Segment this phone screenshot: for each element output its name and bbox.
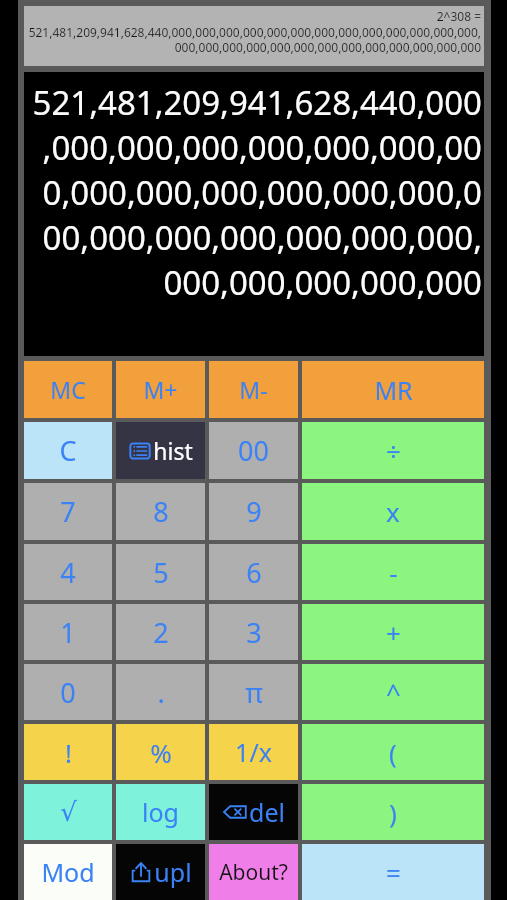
staticText: 5: [153, 554, 169, 591]
staticText: 00: [238, 432, 269, 469]
button[interactable]: 3: [209, 604, 298, 660]
staticText: .: [157, 674, 165, 711]
button[interactable]: x: [302, 483, 484, 540]
button[interactable]: M-: [209, 361, 298, 418]
button[interactable]: +: [302, 604, 484, 660]
button[interactable]: .: [116, 664, 205, 720]
staticText: M+: [143, 374, 178, 405]
staticText: !: [65, 735, 72, 770]
button[interactable]: del: [209, 784, 298, 840]
staticText: 1: [60, 614, 76, 651]
button[interactable]: ): [302, 784, 484, 840]
button[interactable]: -: [302, 544, 484, 600]
staticText: +: [386, 615, 401, 650]
staticText: About?: [219, 858, 288, 887]
button[interactable]: 6: [209, 544, 298, 600]
button[interactable]: 7: [24, 483, 112, 540]
staticText: 9: [246, 493, 262, 530]
button[interactable]: 1: [24, 604, 112, 660]
staticText: del: [249, 795, 285, 829]
staticText: 521,481,209,941,628,440,000,000,000,000,…: [26, 80, 482, 305]
staticText: ^: [386, 675, 401, 710]
staticText: 8: [153, 493, 169, 530]
button[interactable]: ÷: [302, 422, 484, 479]
button[interactable]: %: [116, 724, 205, 780]
staticText: 521,481,209,941,628,440,000,000,000,000,…: [27, 24, 481, 55]
staticText: log: [142, 795, 179, 829]
staticText: Mod: [41, 855, 95, 889]
staticText: 2: [153, 614, 169, 651]
staticText: √: [60, 797, 77, 827]
staticText: %: [150, 735, 172, 770]
staticText: upl: [154, 855, 192, 889]
button[interactable]: hist: [116, 422, 205, 479]
staticText: C: [59, 432, 77, 469]
staticText: ): [389, 795, 397, 830]
button[interactable]: Mod: [24, 844, 112, 900]
button[interactable]: (: [302, 724, 484, 780]
button[interactable]: 4: [24, 544, 112, 600]
staticText: 7: [60, 493, 76, 530]
staticText: 0: [60, 674, 76, 711]
staticText: MR: [374, 373, 413, 407]
staticText: -: [389, 555, 398, 590]
button[interactable]: About?: [209, 844, 298, 900]
button[interactable]: MR: [302, 361, 484, 418]
staticText: (: [389, 735, 397, 770]
button[interactable]: log: [116, 784, 205, 840]
staticText: π: [245, 674, 263, 711]
button[interactable]: MC: [24, 361, 112, 418]
button[interactable]: 2: [116, 604, 205, 660]
button[interactable]: √: [24, 784, 112, 840]
staticText: 1/x: [235, 735, 272, 769]
staticText: =: [386, 855, 401, 890]
button[interactable]: ^: [302, 664, 484, 720]
staticText: ÷: [386, 433, 401, 468]
staticText: 3: [246, 614, 262, 651]
staticText: 2^308 =: [27, 8, 481, 24]
staticText: MC: [50, 374, 86, 405]
button[interactable]: 5: [116, 544, 205, 600]
button[interactable]: !: [24, 724, 112, 780]
staticText: M-: [239, 374, 268, 405]
button[interactable]: M+: [116, 361, 205, 418]
button[interactable]: =: [302, 844, 484, 900]
staticText: 4: [60, 554, 76, 591]
button[interactable]: 9: [209, 483, 298, 540]
button[interactable]: 1/x: [209, 724, 298, 780]
staticText: x: [386, 494, 400, 529]
button[interactable]: upl: [116, 844, 205, 900]
staticText: hist: [153, 435, 193, 466]
staticText: 6: [246, 554, 262, 591]
button[interactable]: 00: [209, 422, 298, 479]
button[interactable]: π: [209, 664, 298, 720]
button[interactable]: 0: [24, 664, 112, 720]
button[interactable]: C: [24, 422, 112, 479]
button[interactable]: 8: [116, 483, 205, 540]
